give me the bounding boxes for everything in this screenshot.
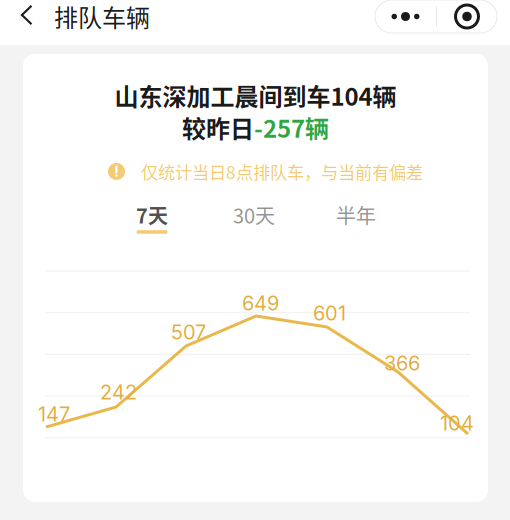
- staticText: 30天: [233, 200, 275, 229]
- button[interactable]: 30天: [218, 202, 290, 232]
- button[interactable]: More options: [375, 0, 497, 33]
- staticText: 601: [313, 301, 346, 325]
- staticText: 104: [440, 411, 474, 435]
- staticText: 半年: [336, 200, 376, 229]
- button[interactable]: 半年: [320, 202, 392, 232]
- staticText: 仅统计当日8点排队车，与当前有偏差: [141, 159, 423, 184]
- staticText: 山东深加工晨间到车104辆: [114, 78, 396, 113]
- button[interactable]: Back: [6, 0, 48, 33]
- staticText: 7天: [136, 200, 168, 229]
- staticText: 242: [100, 380, 137, 404]
- staticText: 507: [171, 320, 206, 344]
- staticText: 较昨日: [182, 110, 254, 145]
- staticText: 649: [242, 291, 279, 315]
- staticText: 排队车辆: [54, 0, 150, 34]
- button[interactable]: 7天: [116, 202, 188, 232]
- staticText: 147: [38, 402, 70, 426]
- staticText: -257辆: [254, 110, 329, 145]
- staticText: !: [114, 163, 119, 180]
- staticText: 366: [384, 351, 420, 375]
